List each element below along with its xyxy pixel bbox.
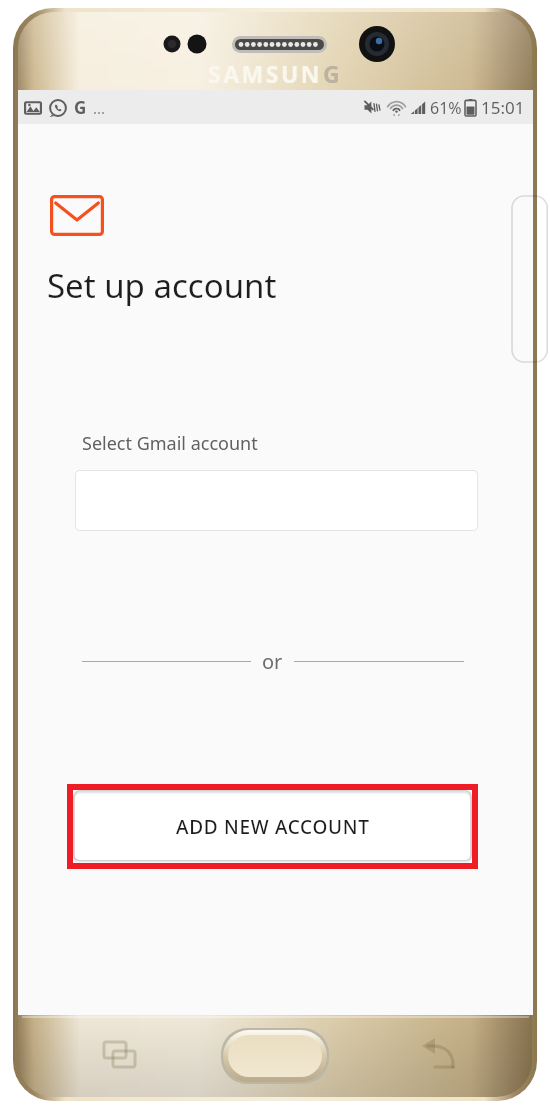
staticText: 61% — [430, 97, 462, 119]
staticText: ADD NEW ACCOUNT — [176, 814, 370, 840]
staticText: Select Gmail account — [82, 431, 258, 456]
button[interactable]: ADD NEW ACCOUNT — [73, 790, 472, 863]
staticText: G — [74, 96, 87, 119]
staticText: or — [262, 648, 283, 675]
staticText: G — [323, 58, 343, 89]
button[interactable] — [75, 470, 478, 531]
staticText: Set up account — [47, 263, 277, 308]
staticText: ... — [93, 98, 106, 118]
staticText: 15:01 — [481, 96, 525, 119]
staticText: SAMSUN — [208, 58, 323, 89]
